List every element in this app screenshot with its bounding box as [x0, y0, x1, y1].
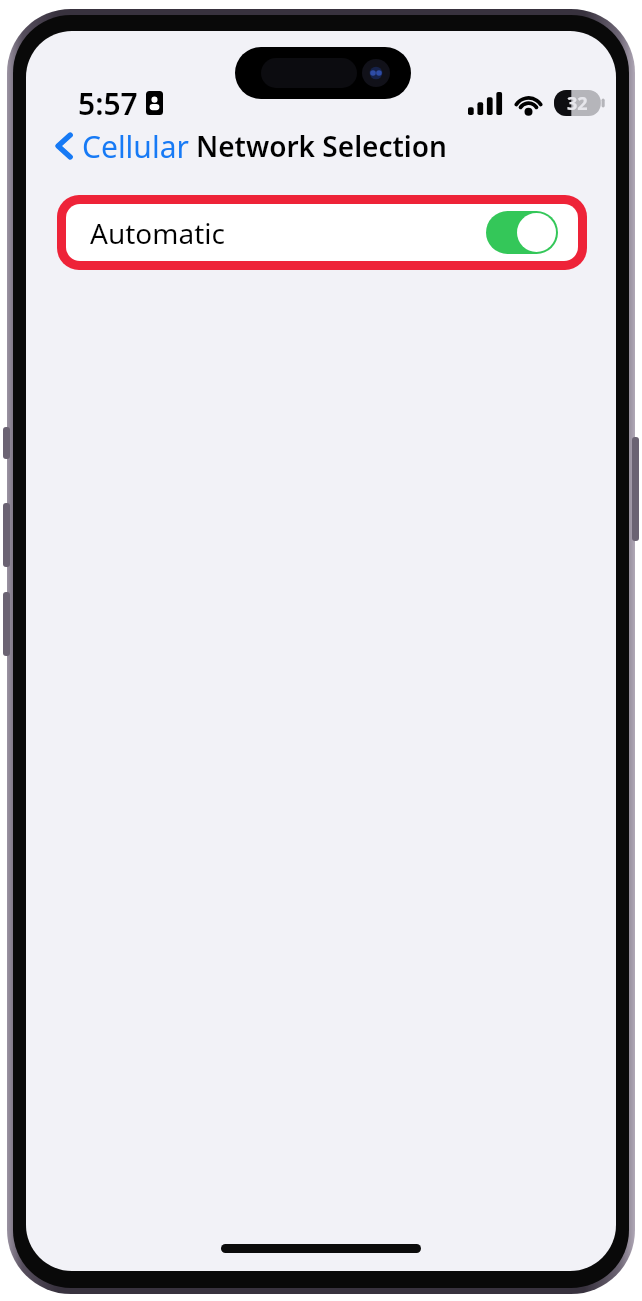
staticText: 5:57: [78, 83, 138, 123]
staticText: Cellular: [82, 126, 189, 167]
staticText: Network Selection: [196, 127, 447, 165]
button[interactable]: Automatic, on: [486, 211, 558, 254]
staticText: 32: [567, 91, 588, 116]
staticText: Automatic: [90, 214, 225, 252]
button[interactable]: Automatic: [66, 204, 578, 261]
button[interactable]: Cellular: [44, 119, 199, 173]
